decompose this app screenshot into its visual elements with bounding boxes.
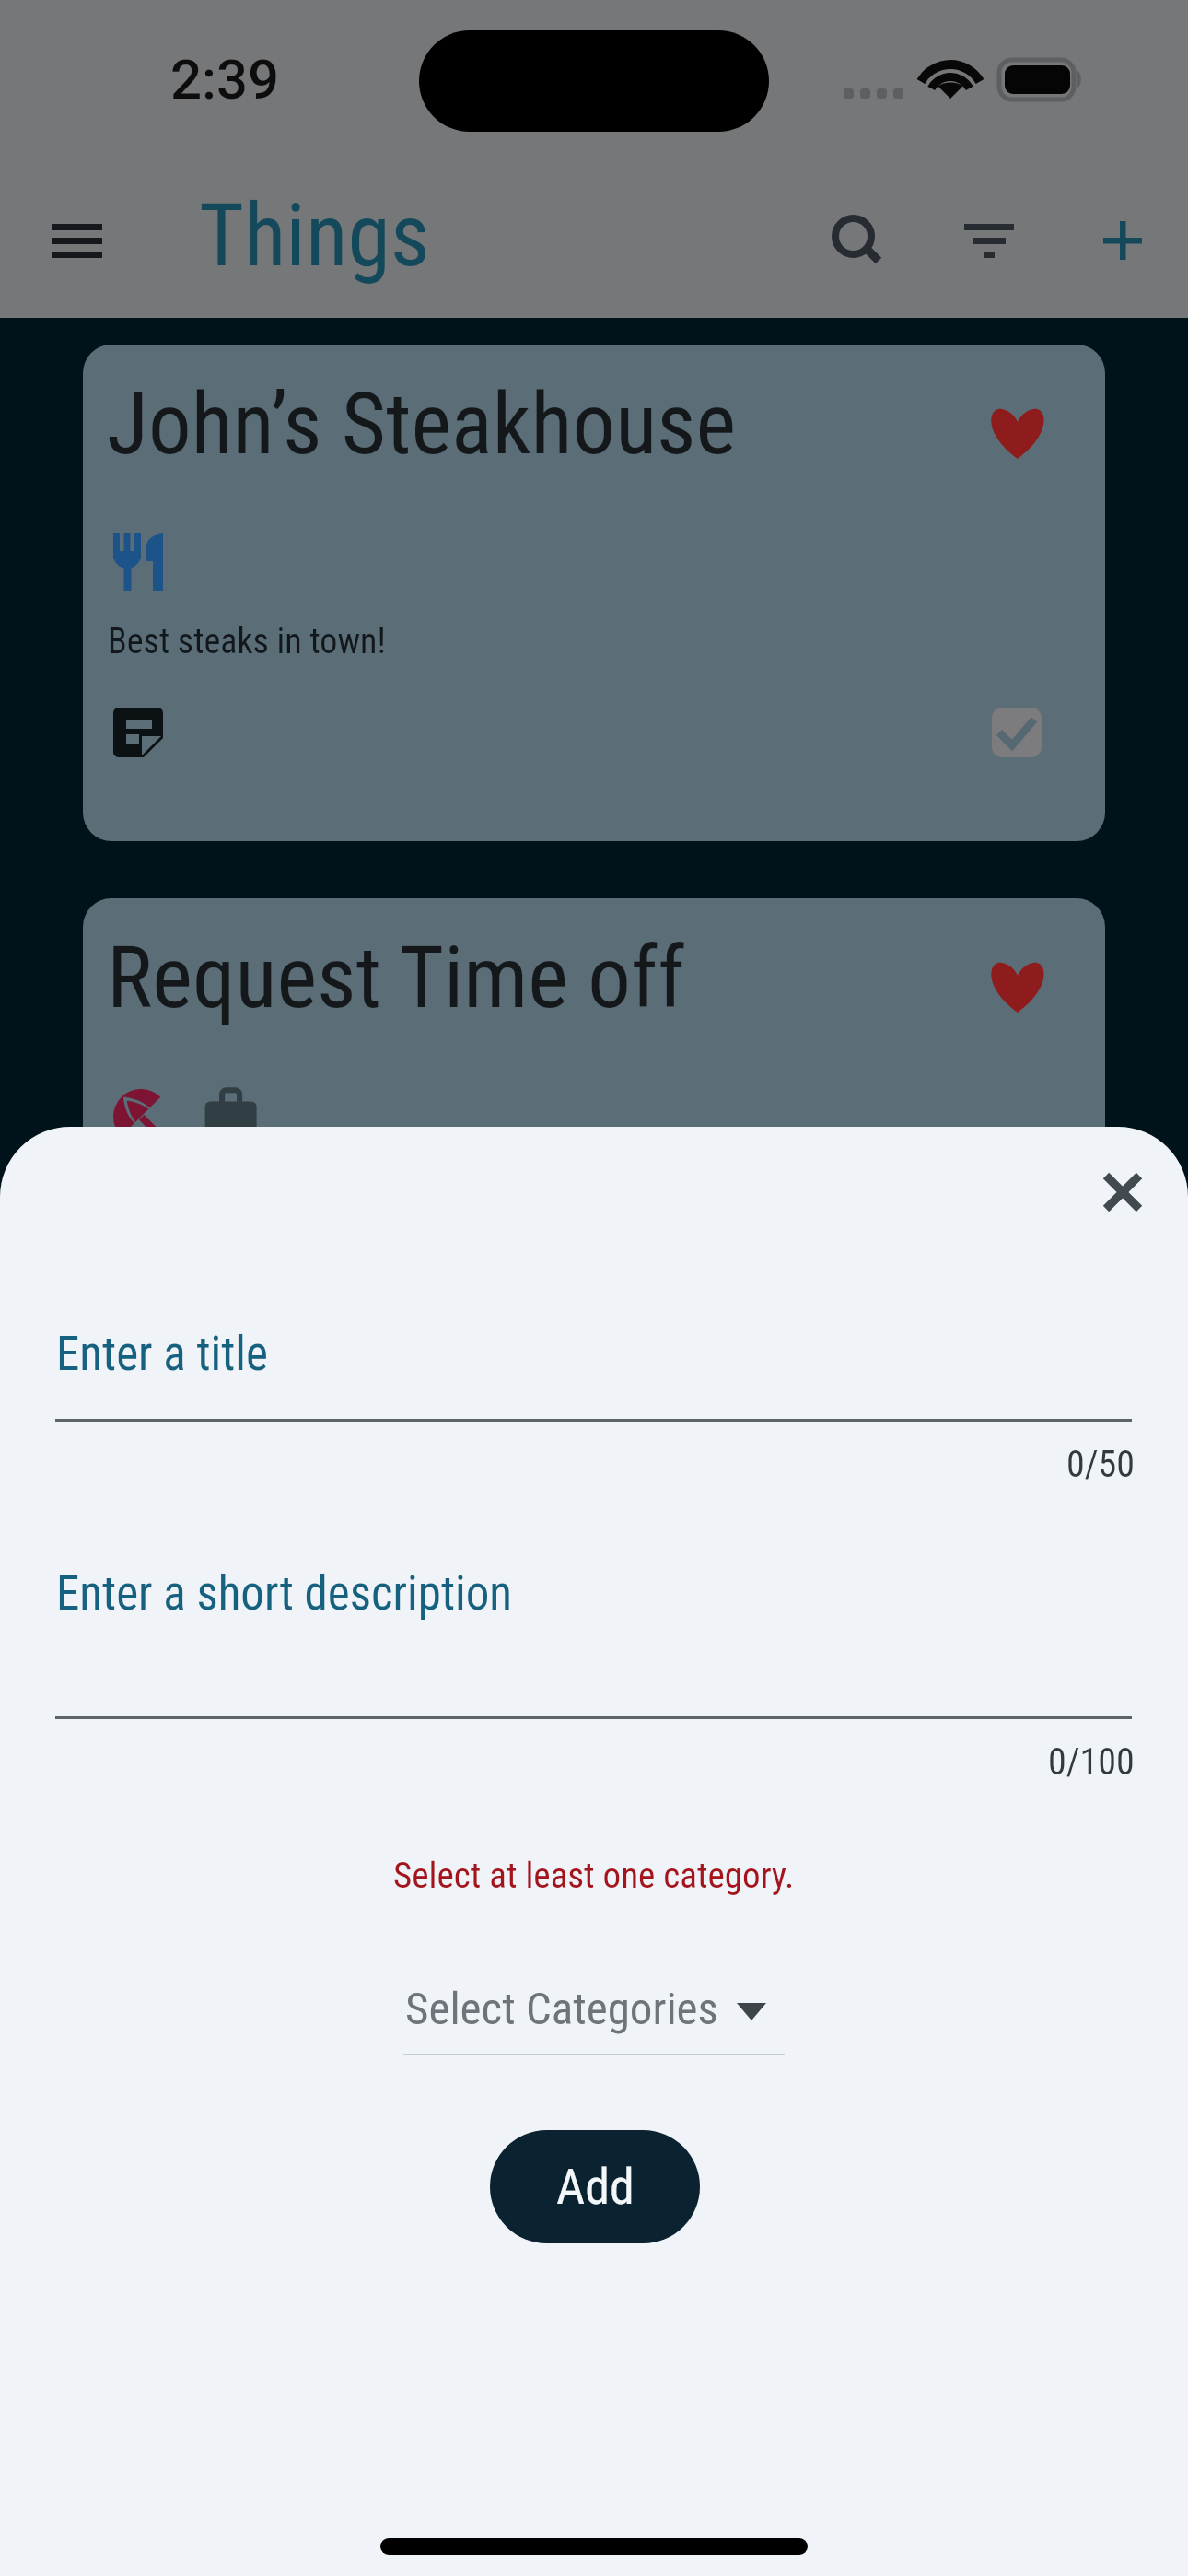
button[interactable]: Select Categories: [403, 1973, 785, 2054]
button[interactable]: Completed: [992, 708, 1042, 757]
staticText: Enter a title: [56, 1327, 268, 1382]
button[interactable]: Add item: [1067, 185, 1178, 296]
staticText: Enter a short description: [56, 1566, 513, 1622]
button[interactable]: Search: [810, 193, 909, 291]
staticText: Add: [556, 2158, 635, 2216]
staticText: 2:39: [170, 47, 280, 111]
staticText: 0/50: [1066, 1443, 1136, 1486]
staticText: 0/100: [1048, 1740, 1135, 1784]
staticText: John’s Steakhouse: [107, 374, 737, 474]
button[interactable]: Close: [1077, 1146, 1169, 1238]
button[interactable]: Add: [490, 2130, 700, 2243]
staticText: Things: [199, 185, 430, 287]
staticText: Request Time off: [107, 928, 685, 1028]
button[interactable]: Request Time off: [83, 898, 1105, 1395]
button[interactable]: Menu: [22, 188, 133, 299]
button[interactable]: Filter: [934, 188, 1044, 299]
button[interactable]: John’s Steakhouse: [83, 345, 1105, 841]
staticText: Select Categories: [405, 1983, 718, 2035]
staticText: Best steaks in town!: [108, 621, 386, 662]
staticText: Select at least one category.: [393, 1855, 795, 1897]
